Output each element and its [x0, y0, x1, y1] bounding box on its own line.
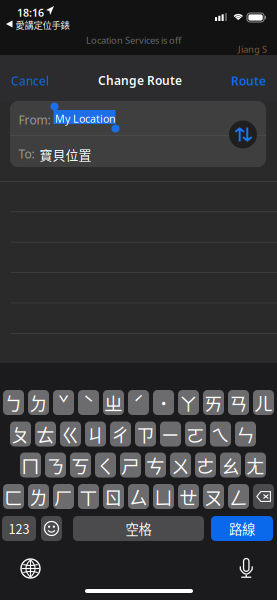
button[interactable]: Swap start and destination	[229, 120, 257, 148]
button[interactable]: ㄣ	[235, 421, 256, 446]
staticText: ㄗ	[136, 420, 155, 447]
staticText: ㄚ	[179, 389, 198, 416]
button[interactable]: Dictate	[239, 558, 253, 578]
button[interactable]: 空格	[73, 516, 204, 541]
staticText: ㄑ	[96, 451, 115, 478]
button[interactable]: ㄅ	[3, 390, 24, 415]
staticText: 路線	[229, 519, 255, 538]
button[interactable]: ˊ	[128, 390, 149, 415]
button[interactable]: ㄑ	[95, 452, 116, 477]
button[interactable]: ㄦ	[253, 390, 274, 415]
button[interactable]: ㄥ	[228, 484, 249, 509]
button[interactable]: ㄧ	[160, 421, 181, 446]
button[interactable]: Cancel	[11, 73, 49, 89]
staticText: ㄉ	[29, 389, 48, 416]
staticText: To:	[18, 146, 34, 162]
button[interactable]: Emoji	[41, 516, 62, 541]
button[interactable]: ㄞ	[203, 390, 224, 415]
staticText: 123	[8, 519, 29, 538]
staticText: ㄡ	[204, 483, 223, 510]
staticText: ㄌ	[29, 483, 48, 510]
button[interactable]: ㄢ	[228, 390, 249, 415]
button[interactable]: ㄏ	[53, 484, 74, 509]
button[interactable]: ㄍ	[60, 421, 81, 446]
button[interactable]: 123	[2, 516, 36, 541]
button[interactable]: ㄓ	[103, 390, 124, 415]
staticText: ㄦ	[254, 389, 273, 416]
button[interactable]: ㄐ	[85, 421, 106, 446]
staticText: ㄩ	[154, 483, 173, 510]
staticText: ㄒ	[79, 483, 98, 510]
button[interactable]: ㄗ	[135, 421, 156, 446]
staticText: ㄞ	[204, 389, 223, 416]
button[interactable]: Delete	[253, 484, 274, 509]
button[interactable]: ㄨ	[170, 452, 191, 477]
button[interactable]: ㄉ	[28, 390, 49, 415]
staticText: 空格	[125, 519, 151, 538]
staticText: Change Route	[98, 72, 182, 88]
staticText: ㄔ	[111, 420, 130, 447]
staticText: ㄟ	[211, 420, 230, 447]
staticText: ㄛ	[186, 420, 205, 447]
button[interactable]: ㄛ	[185, 421, 206, 446]
button[interactable]: ㄠ	[220, 452, 241, 477]
staticText: ㄓ	[104, 389, 123, 416]
staticText: ㄧ	[161, 420, 180, 447]
staticText: Route	[231, 73, 266, 89]
staticText: ㄙ	[129, 483, 148, 510]
staticText: ㄎ	[71, 451, 90, 478]
button[interactable]: ㄕ	[120, 452, 141, 477]
button[interactable]: ㄝ	[178, 484, 199, 509]
button[interactable]: Next keyboard	[21, 559, 40, 578]
staticText: ㄢ	[229, 389, 248, 416]
button[interactable]: ㄟ	[210, 421, 231, 446]
staticText: ㄆ	[11, 420, 30, 447]
staticText: ㄊ	[36, 420, 55, 447]
button[interactable]: ㄌ	[28, 484, 49, 509]
staticText: ˇ	[58, 389, 69, 416]
button[interactable]: ㄒ	[78, 484, 99, 509]
staticText: 18:16	[17, 5, 44, 20]
staticText: ㄤ	[246, 451, 265, 478]
button[interactable]: ㄎ	[70, 452, 91, 477]
button[interactable]: ㄈ	[3, 484, 24, 509]
staticText: ㄇ	[21, 451, 40, 478]
button[interactable]: ㄖ	[103, 484, 124, 509]
button[interactable]: ㄊ	[35, 421, 56, 446]
button[interactable]: ㄇ	[20, 452, 41, 477]
staticText: ㄏ	[54, 483, 73, 510]
button[interactable]: ˇ	[53, 390, 74, 415]
button[interactable]: ㄩ	[153, 484, 174, 509]
button[interactable]: Route	[231, 73, 266, 89]
staticText: 愛講定位手錶	[15, 18, 69, 31]
button[interactable]: ㄡ	[203, 484, 224, 509]
staticText: ㄨ	[171, 451, 190, 478]
staticText: ˋ	[83, 389, 94, 416]
button[interactable]: ㄔ	[110, 421, 131, 446]
button[interactable]: ㄋ	[45, 452, 66, 477]
staticText: ㄐ	[86, 420, 105, 447]
staticText: ˊ	[133, 389, 144, 416]
button[interactable]: 路線	[211, 516, 273, 541]
button[interactable]: ㄤ	[245, 452, 266, 477]
staticText: ㄕ	[121, 451, 140, 478]
button[interactable]: ˙	[153, 390, 174, 415]
staticText: ㄍ	[61, 420, 80, 447]
staticText: ㄣ	[236, 420, 255, 447]
staticText: Cancel	[11, 73, 49, 89]
staticText: ㄥ	[229, 483, 248, 510]
staticText: From:	[18, 112, 50, 128]
staticText: ˙	[159, 389, 168, 416]
button[interactable]: ˋ	[78, 390, 99, 415]
staticText: ㄜ	[196, 451, 215, 478]
button[interactable]: ㄚ	[178, 390, 199, 415]
staticText: 寶貝位置	[39, 145, 91, 164]
staticText: ㄘ	[146, 451, 165, 478]
button[interactable]: ㄆ	[10, 421, 31, 446]
button[interactable]: ㄜ	[195, 452, 216, 477]
button[interactable]: ㄘ	[145, 452, 166, 477]
staticText: ㄝ	[179, 483, 198, 510]
staticText: ㄋ	[46, 451, 65, 478]
staticText: ㄠ	[221, 451, 240, 478]
button[interactable]: ㄙ	[128, 484, 149, 509]
